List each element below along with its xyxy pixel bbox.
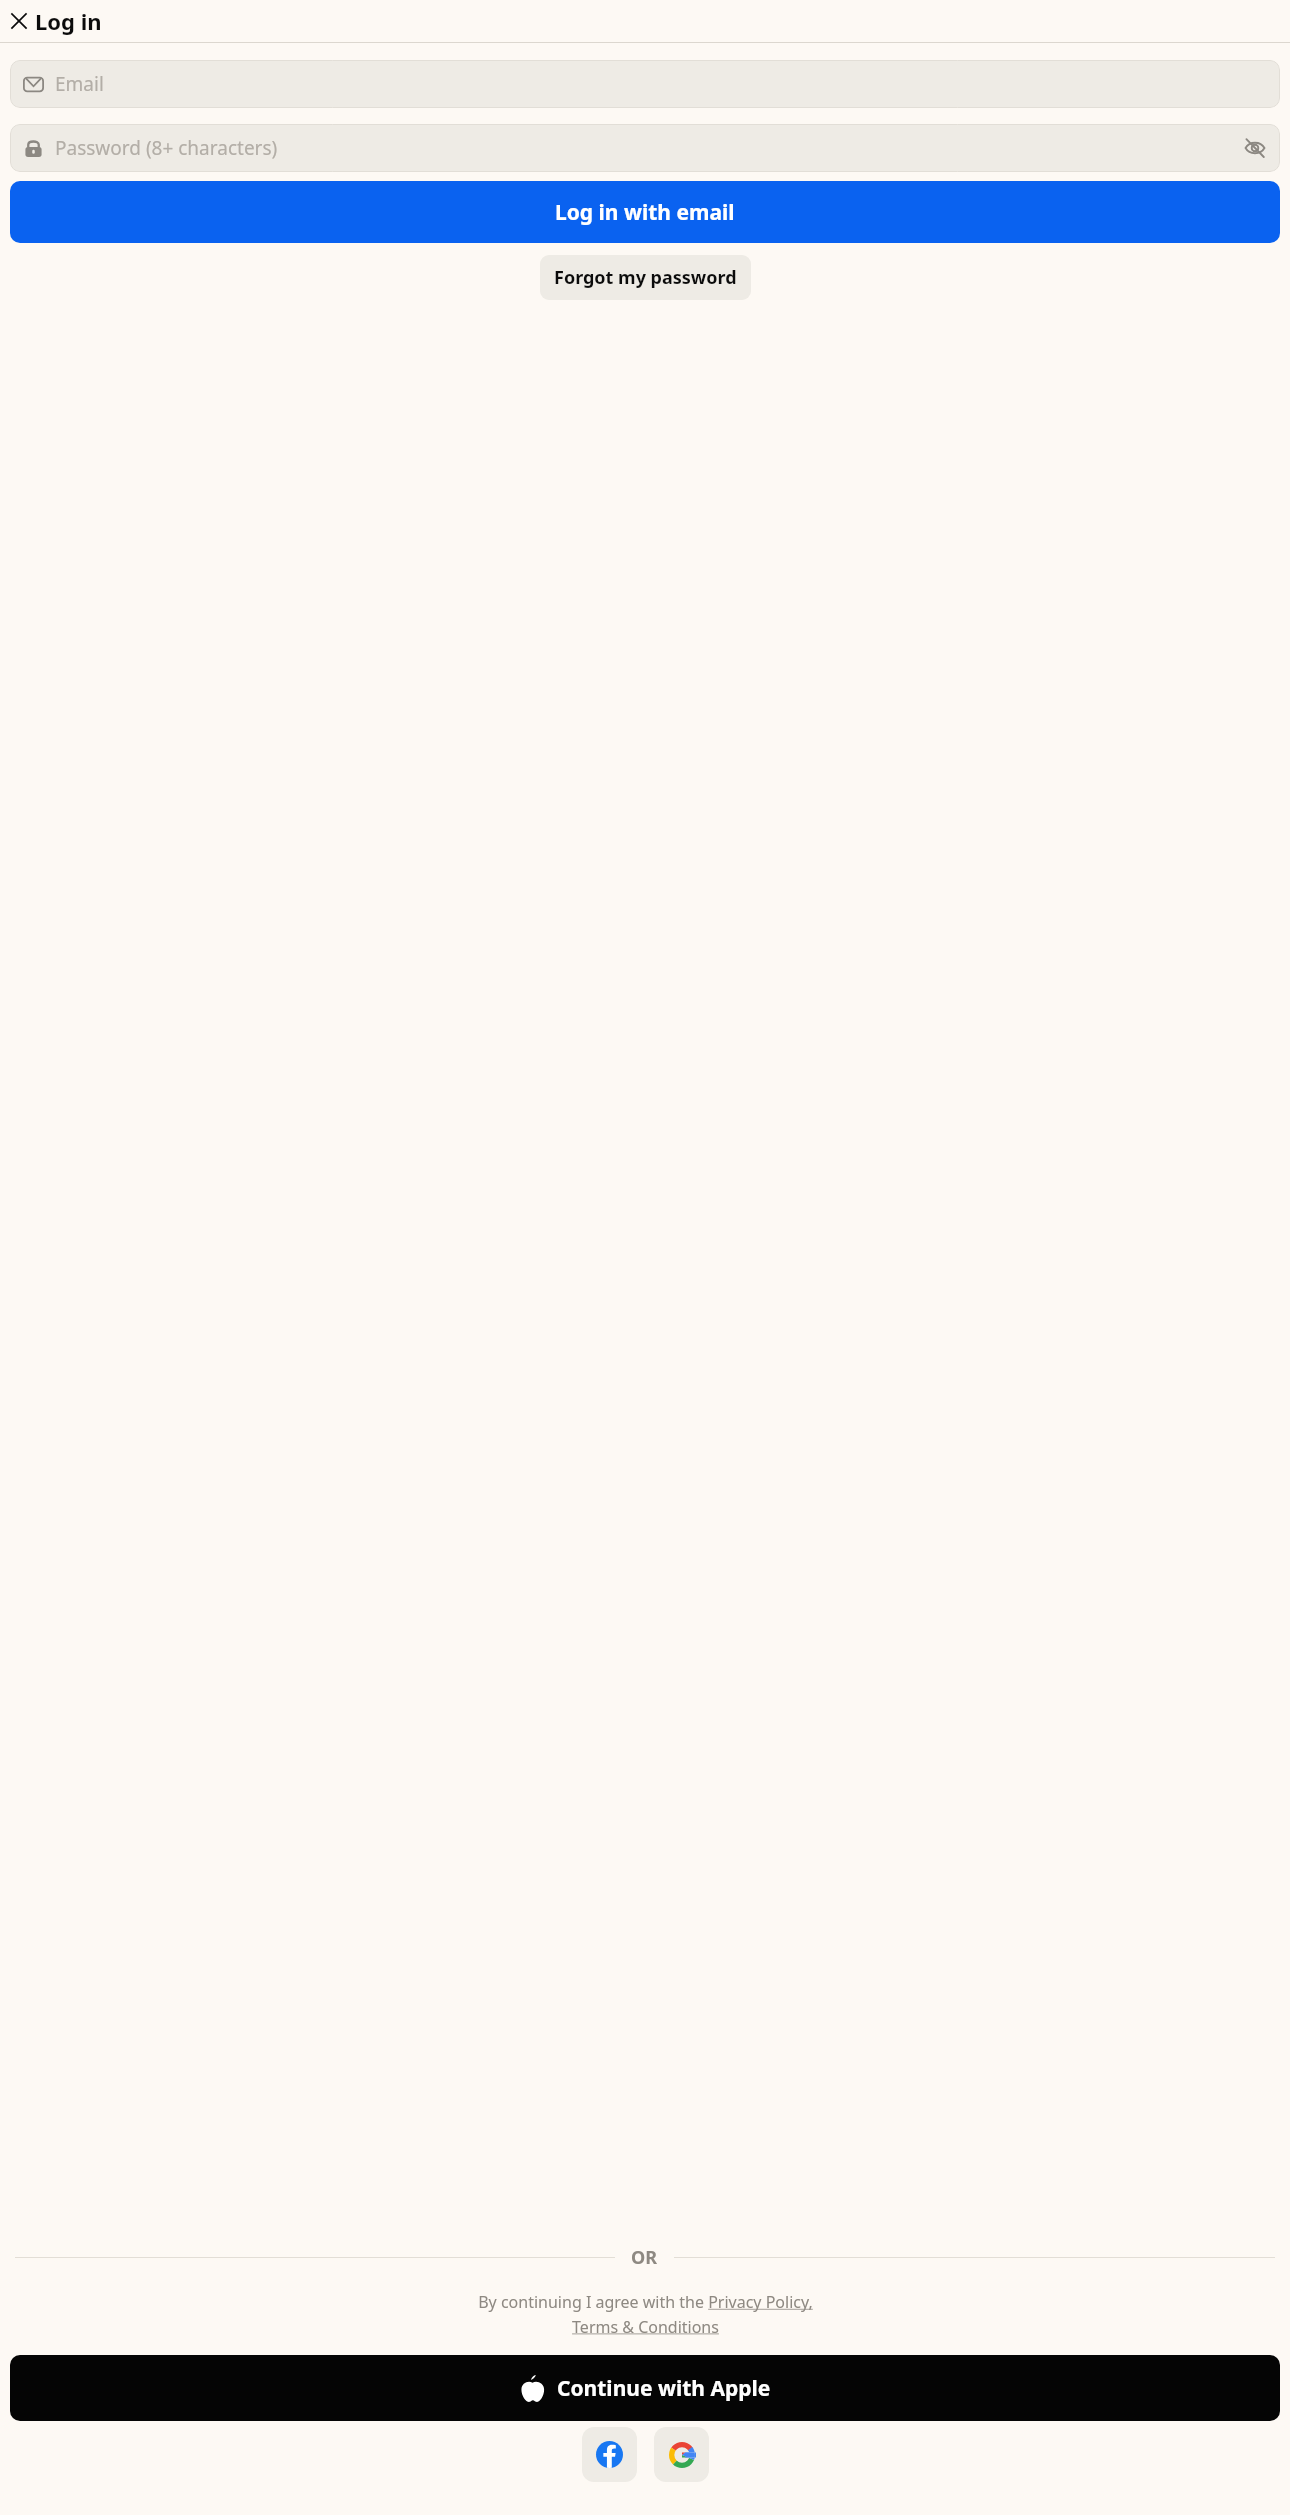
button[interactable]: Show password bbox=[1240, 133, 1270, 163]
staticText: Log in bbox=[35, 6, 102, 36]
button[interactable]: Log in with email bbox=[10, 181, 1280, 243]
button[interactable]: Close bbox=[6, 8, 32, 34]
staticText: By continuing I agree with the Privacy P… bbox=[478, 2291, 813, 2337]
staticText: Forgot my password bbox=[554, 265, 737, 290]
button[interactable]: Continue with Apple bbox=[10, 2355, 1280, 2421]
staticText: Password (8+ characters) bbox=[55, 135, 1240, 161]
button[interactable]: Email bbox=[10, 60, 1280, 108]
button[interactable]: Continue with Facebook bbox=[582, 2427, 637, 2482]
staticText: Log in with email bbox=[555, 198, 735, 227]
staticText: OR bbox=[631, 2245, 658, 2270]
staticText: Continue with Apple bbox=[557, 2374, 771, 2403]
button[interactable]: By continuing I agree with the Privacy P… bbox=[0, 2291, 1290, 2337]
button[interactable]: Forgot my password bbox=[540, 255, 751, 300]
button[interactable]: Continue with Google bbox=[654, 2427, 709, 2482]
button[interactable]: Password (8+ characters) bbox=[10, 124, 1280, 172]
staticText: Email bbox=[55, 71, 104, 97]
